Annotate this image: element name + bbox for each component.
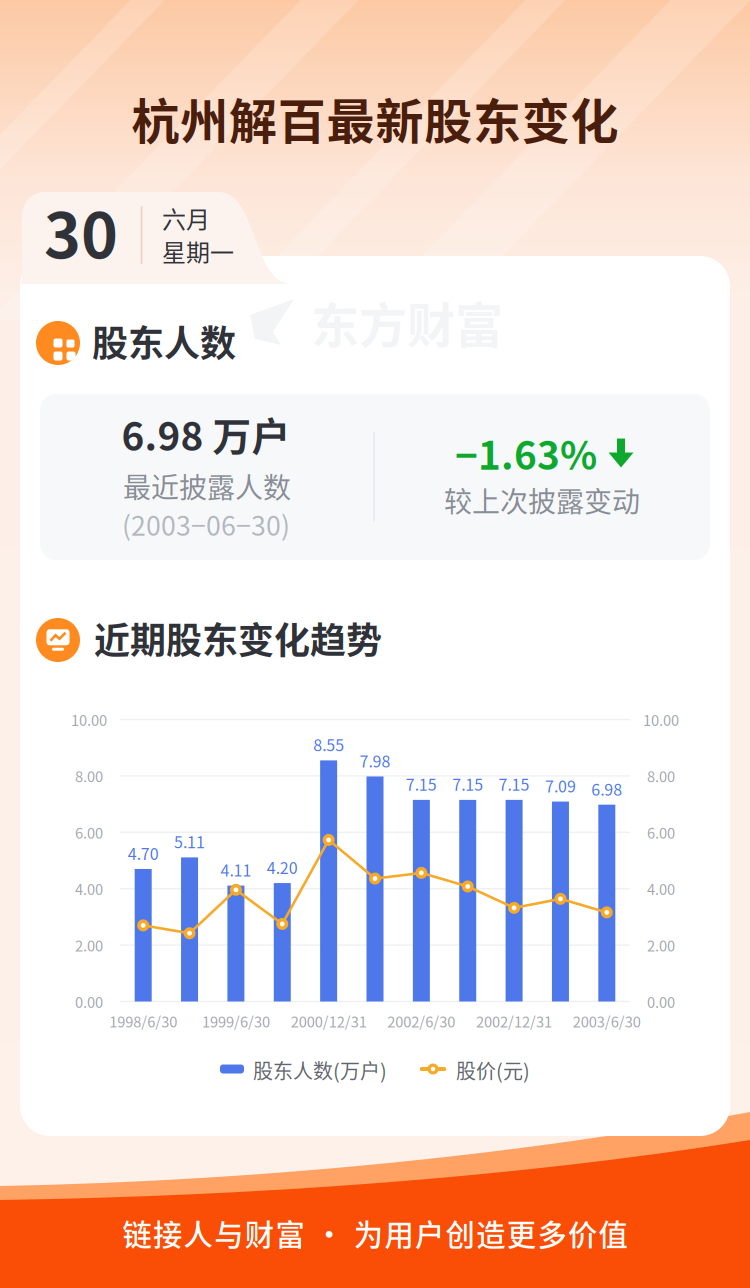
staticText: 2002/6/30 xyxy=(387,1010,455,1032)
staticText: 4.00 xyxy=(75,878,103,899)
staticText: 股东人数(万户) xyxy=(253,1055,387,1084)
staticText: −1.63% xyxy=(455,425,597,481)
staticText: 2002/12/31 xyxy=(476,1010,552,1032)
staticText: 东方财富 xyxy=(311,287,503,357)
staticText: 股东人数 xyxy=(92,315,236,367)
staticText: 7.15 xyxy=(406,772,437,795)
staticText: 7.98 xyxy=(359,749,390,772)
staticText: 2003/6/30 xyxy=(573,1010,641,1032)
staticText: 星期一 xyxy=(162,234,234,268)
staticText: 8.00 xyxy=(75,765,103,786)
staticText: 5.11 xyxy=(174,830,205,853)
staticText: 6.98 万户 xyxy=(121,406,290,462)
staticText: 较上次披露变动 xyxy=(444,480,640,520)
staticText: 30 xyxy=(44,186,118,276)
staticText: 6.00 xyxy=(647,822,675,843)
staticText: 最近披露人数 xyxy=(123,466,291,506)
staticText: 10.00 xyxy=(643,709,679,730)
staticText: 8.55 xyxy=(313,733,344,756)
staticText: 7.09 xyxy=(545,774,576,797)
staticText: 六月 xyxy=(162,201,210,235)
staticText: 2.00 xyxy=(647,934,675,956)
staticText: 2000/12/31 xyxy=(291,1010,367,1032)
staticText: 2.00 xyxy=(75,934,103,956)
staticText: 0.00 xyxy=(647,991,675,1012)
staticText: (2003−06−30) xyxy=(122,505,290,543)
staticText: 4.70 xyxy=(128,841,159,865)
staticText: 7.15 xyxy=(499,772,530,795)
staticText: 4.20 xyxy=(267,855,298,879)
staticText: 4.00 xyxy=(647,878,675,899)
staticText: 7.15 xyxy=(452,772,483,795)
staticText: 近期股东变化趋势 xyxy=(94,612,382,664)
staticText: 1998/6/30 xyxy=(109,1010,177,1032)
staticText: 链接人与财富 · 为用户创造更多价值 xyxy=(122,1212,628,1254)
staticText: 4.11 xyxy=(220,858,251,881)
staticText: 10.00 xyxy=(71,709,107,730)
staticText: 6.00 xyxy=(75,822,103,843)
staticText: 6.98 xyxy=(591,777,622,800)
staticText: 股价(元) xyxy=(456,1055,530,1084)
staticText: 0.00 xyxy=(75,991,103,1012)
staticText: 8.00 xyxy=(647,765,675,786)
staticText: 杭州解百最新股东变化 xyxy=(131,83,619,153)
staticText: 1999/6/30 xyxy=(202,1010,270,1032)
